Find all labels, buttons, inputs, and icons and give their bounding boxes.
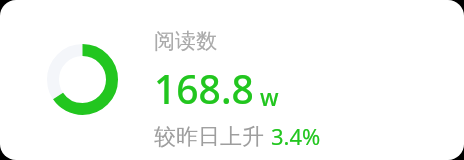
staticText: 阅读数 [154,28,217,54]
other: Reading count progress [47,44,118,115]
button[interactable]: Reading count progress [0,0,464,160]
staticText: 较昨日上升 [154,123,264,151]
staticText: w [260,81,279,112]
staticText: 168.8 [154,62,254,115]
staticText: 3.4% [271,121,321,151]
